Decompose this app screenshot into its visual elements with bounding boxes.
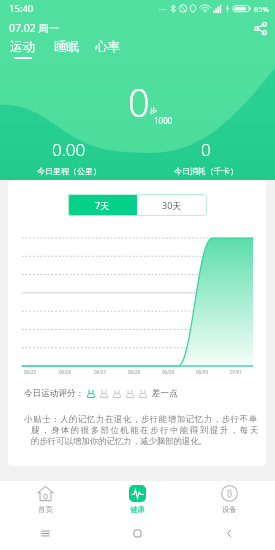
button[interactable]: 心率 (95, 39, 120, 57)
staticText: 的步行可以增加你的记忆力，减少脑部的退化。 (31, 436, 208, 447)
staticText: 今日里程（公里） (37, 166, 101, 176)
button[interactable]: Back (183, 519, 275, 547)
staticText: 7天 (95, 199, 110, 211)
staticText: 15:40 (9, 2, 34, 15)
button[interactable]: Recents (0, 519, 91, 547)
staticText: 30天 (162, 199, 182, 211)
staticText: 健康 (130, 505, 145, 514)
staticText: 运动 (10, 39, 35, 55)
staticText: 首页 (38, 505, 53, 514)
button[interactable]: 30天 (137, 194, 207, 216)
button[interactable]: 睡眠 (54, 39, 79, 57)
staticText: 小贴士：人的记忆力在退化，步行能增加记忆力，步行不单是锻炼 (24, 414, 265, 425)
button[interactable]: Home (91, 519, 183, 547)
button[interactable]: 分享 (249, 17, 271, 39)
staticText: 07/01 (230, 369, 242, 375)
staticText: 0 (128, 76, 150, 128)
staticText: 06/25 (24, 369, 36, 375)
staticText: 1000 (154, 115, 173, 126)
staticText: 0 (201, 138, 211, 161)
staticText: 设备 (222, 505, 237, 514)
staticText: 06/26 (59, 369, 71, 375)
staticText: 85% (254, 4, 269, 14)
staticText: 腿，身体的很多部位机能在步行中能得到提升，每天早上 (31, 425, 265, 436)
staticText: 心率 (95, 39, 120, 55)
staticText: 06/27 (94, 369, 106, 375)
button[interactable]: 7天 (68, 194, 137, 216)
staticText: 步 (150, 106, 157, 115)
staticText: 06/30 (196, 369, 208, 375)
button[interactable]: 设备 (183, 481, 275, 514)
button[interactable]: 首页 (0, 481, 91, 514)
button[interactable]: 健康 (91, 481, 183, 514)
staticText: 今日运动评分： (24, 388, 85, 399)
staticText: 06/29 (162, 369, 174, 375)
staticText: 今日消耗（千卡） (174, 166, 238, 176)
staticText: 0.00 (52, 138, 86, 161)
staticText: 睡眠 (54, 39, 79, 55)
button[interactable]: 运动 (10, 39, 35, 59)
staticText: 07.02 周一 (9, 21, 60, 35)
staticText: 差一点 (152, 388, 178, 399)
staticText: 06/28 (128, 369, 140, 375)
